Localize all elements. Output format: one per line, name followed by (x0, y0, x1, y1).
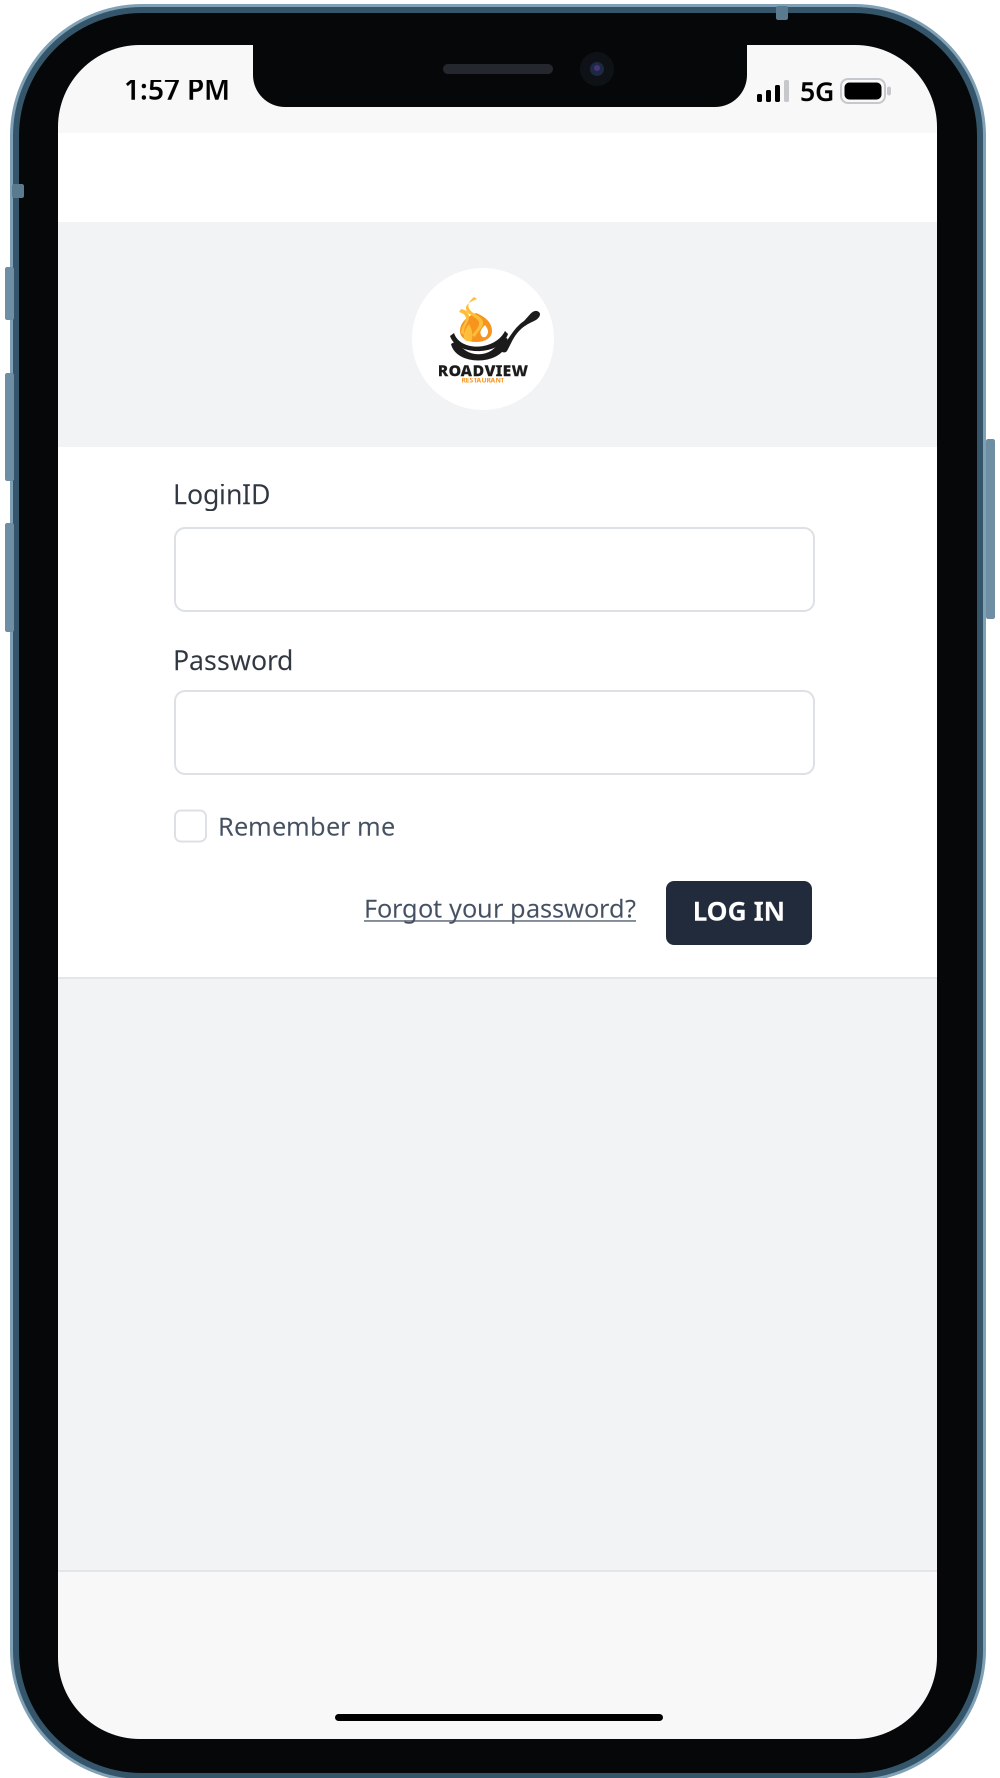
staticText: 5G (800, 73, 834, 109)
button[interactable]: Forgot your password? (364, 886, 636, 930)
button[interactable]: Remember me (175, 802, 437, 850)
staticText: Remember me (218, 809, 395, 843)
staticText: RESTAURANT (461, 376, 504, 384)
staticText: LOG IN (692, 893, 785, 928)
staticText: Password (173, 642, 293, 678)
button[interactable]: LoginID text field (175, 528, 814, 611)
button[interactable]: Password text field (175, 691, 814, 774)
staticText: 1:57 PM (124, 70, 230, 108)
staticText: Forgot your password? (364, 891, 636, 925)
button[interactable]: LOG IN (666, 881, 812, 945)
staticText: LoginID (173, 476, 270, 512)
staticText: ROADVIEW (437, 359, 528, 381)
